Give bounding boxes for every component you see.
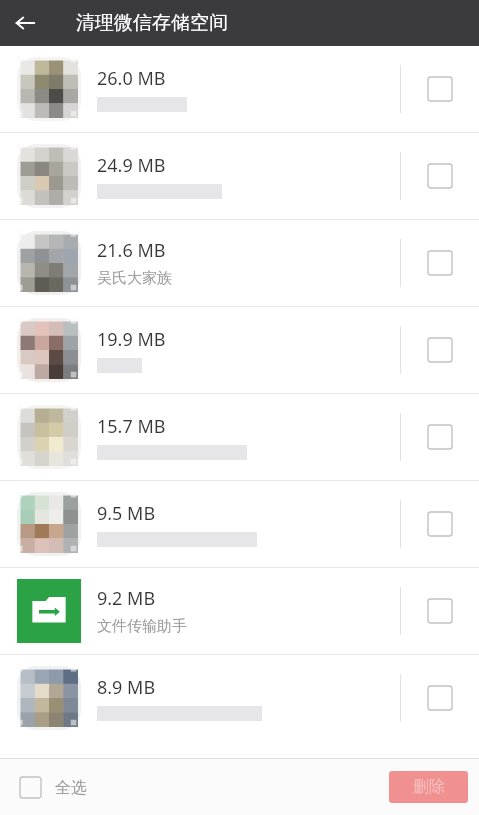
button[interactable]: Select item: [401, 394, 479, 480]
button[interactable]: 9.2 MB: [0, 568, 479, 654]
staticText: 24.9 MB: [97, 153, 166, 178]
button[interactable]: Select item: [401, 46, 479, 132]
button[interactable]: 24.9 MB: [0, 133, 479, 219]
button[interactable]: Select item: [401, 568, 479, 654]
staticText: 26.0 MB: [97, 66, 166, 91]
button[interactable]: Select item: [401, 655, 479, 741]
staticText: 9.2 MB: [97, 586, 156, 611]
staticText: 吴氏大家族: [97, 269, 172, 288]
button[interactable]: Select item: [401, 133, 479, 219]
staticText: 9.5 MB: [97, 501, 156, 526]
button[interactable]: 全选: [14, 771, 87, 804]
button[interactable]: 19.9 MB: [0, 307, 479, 393]
staticText: 19.9 MB: [97, 327, 166, 352]
button[interactable]: Back: [0, 0, 50, 46]
staticText: 全选: [55, 778, 87, 798]
staticText: 删除: [413, 777, 445, 797]
staticText: 15.7 MB: [97, 414, 166, 439]
staticText: 8.9 MB: [97, 675, 156, 700]
button[interactable]: 9.5 MB: [0, 481, 479, 567]
button[interactable]: 8.9 MB: [0, 655, 479, 741]
button[interactable]: 21.6 MB: [0, 220, 479, 306]
button[interactable]: 删除: [389, 771, 468, 803]
button[interactable]: Select item: [401, 220, 479, 306]
button[interactable]: 15.7 MB: [0, 394, 479, 480]
button[interactable]: Select item: [401, 307, 479, 393]
staticText: 文件传输助手: [97, 617, 187, 636]
button[interactable]: 26.0 MB: [0, 46, 479, 132]
staticText: 清理微信存储空间: [76, 11, 228, 35]
staticText: 21.6 MB: [97, 238, 166, 263]
button[interactable]: Select item: [401, 481, 479, 567]
